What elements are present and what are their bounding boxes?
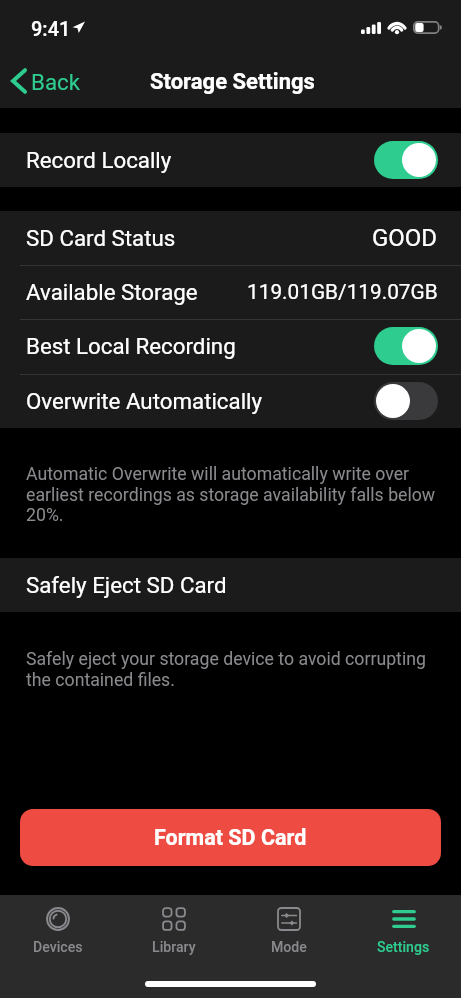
staticText: GOOD [372, 224, 438, 252]
staticText: 119.01GB/119.07GB [247, 280, 438, 304]
button[interactable]: Best Local Recording [374, 327, 438, 365]
staticText: Settings [377, 939, 430, 956]
button[interactable]: Best Local Recording [0, 319, 461, 373]
staticText: Devices [33, 939, 83, 956]
staticText: Available Storage [26, 279, 247, 305]
button[interactable]: Overwrite Automatically [0, 374, 461, 428]
staticText: Record Locally [26, 147, 374, 173]
staticText: Safely Eject SD Card [26, 572, 227, 598]
staticText: Back [31, 69, 80, 95]
button[interactable]: Available Storage [0, 265, 461, 319]
staticText: Overwrite Automatically [26, 388, 374, 414]
staticText: Format SD Card [154, 825, 307, 850]
staticText: Mode [271, 939, 307, 956]
staticText: SD Card Status [26, 225, 372, 251]
button[interactable]: Format SD Card [20, 809, 441, 866]
staticText: Best Local Recording [26, 333, 374, 359]
button[interactable]: Back [0, 54, 94, 108]
button[interactable]: Mode [231, 895, 346, 965]
button[interactable]: Settings [346, 895, 461, 965]
button[interactable]: Devices [0, 895, 116, 965]
staticText: Storage Settings [150, 69, 315, 95]
button[interactable]: Library [116, 895, 231, 965]
button[interactable]: Record Locally [0, 133, 461, 187]
button[interactable]: Record Locally [374, 141, 438, 179]
button[interactable]: Overwrite Automatically [374, 382, 438, 420]
button[interactable]: SD Card Status [0, 211, 461, 265]
staticText: Library [152, 939, 196, 956]
button[interactable]: Safely Eject SD Card [0, 558, 461, 612]
staticText: Automatic Overwrite will automatically w… [26, 464, 437, 525]
staticText: 9:41 [31, 17, 71, 40]
staticText: Safely eject your storage device to avoi… [26, 649, 437, 690]
